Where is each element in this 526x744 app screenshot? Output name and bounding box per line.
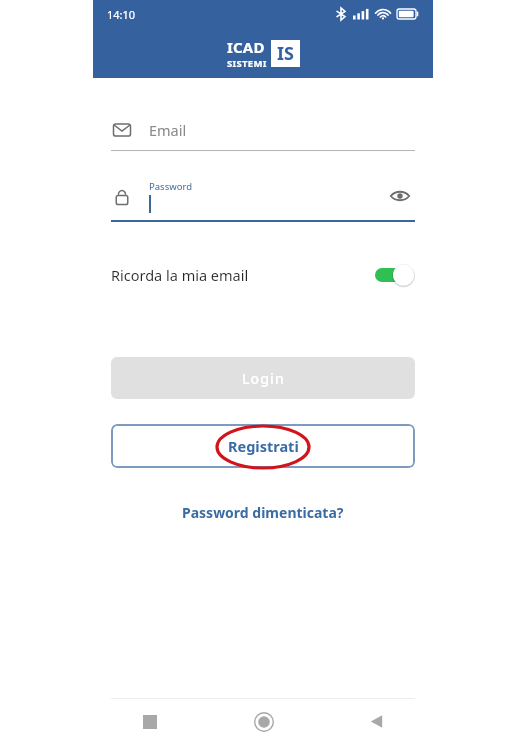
staticText: 14:10 [107, 7, 136, 22]
button[interactable]: Email [111, 110, 415, 151]
button[interactable]: Home [207, 699, 320, 744]
button[interactable]: Recenti [93, 699, 207, 744]
staticText: Email [149, 120, 187, 140]
staticText: IS [277, 41, 294, 66]
staticText: Password [149, 180, 192, 193]
button[interactable]: Ricorda la mia email [111, 258, 415, 292]
button[interactable]: Password dimenticata? [182, 503, 344, 522]
button[interactable]: Login [111, 357, 415, 399]
staticText: SISTEMI [227, 57, 267, 70]
staticText: Login [242, 369, 285, 388]
staticText: Password dimenticata? [182, 503, 344, 522]
staticText: ICAD [227, 37, 265, 57]
button[interactable]: Password [111, 172, 415, 222]
button[interactable]: Indietro [320, 699, 433, 744]
staticText: Registrati [228, 436, 299, 456]
button[interactable]: Mostra password [385, 181, 415, 211]
staticText: Ricorda la mia email [111, 265, 249, 285]
button[interactable]: Registrati [111, 424, 415, 468]
